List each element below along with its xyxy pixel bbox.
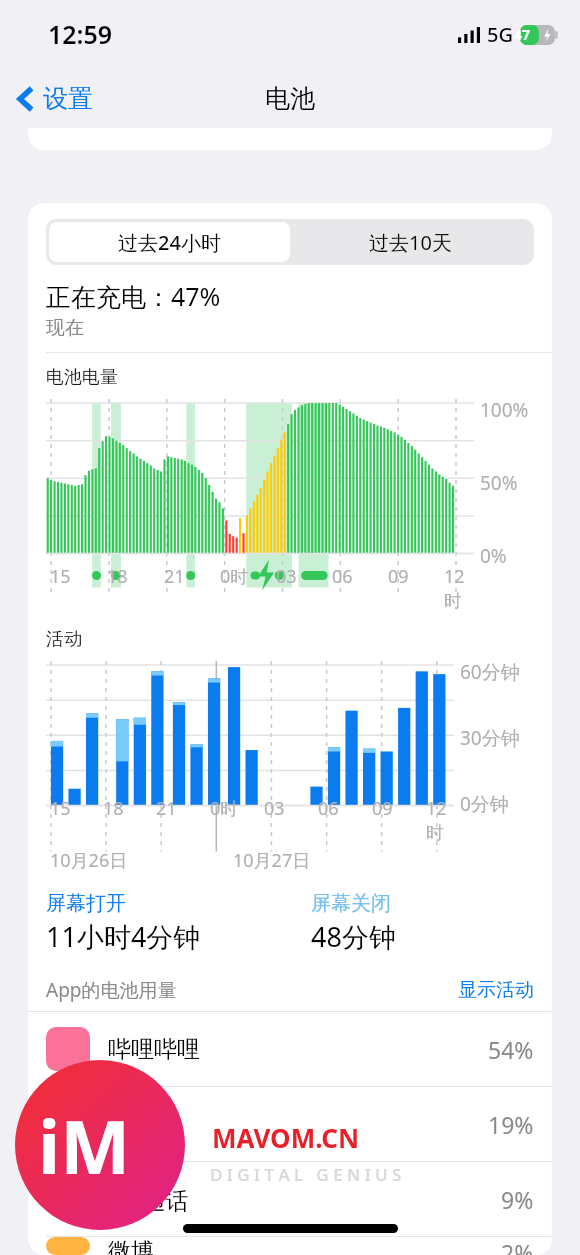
button[interactable]: 哔哩哔哩 bbox=[28, 1012, 552, 1086]
staticText: 60分钟 bbox=[460, 659, 520, 685]
staticText: 过去24小时 bbox=[118, 229, 221, 256]
staticText: 06 bbox=[332, 564, 353, 589]
staticText: 48分钟 bbox=[311, 918, 396, 955]
staticText: 0分钟 bbox=[460, 791, 509, 817]
staticText: 现在 bbox=[46, 316, 84, 340]
staticText: 03 bbox=[276, 564, 297, 589]
staticText: 15 bbox=[50, 564, 71, 589]
button[interactable]: me通话 bbox=[28, 1162, 552, 1236]
staticText: 活动 bbox=[46, 628, 82, 651]
staticText: 03 bbox=[264, 796, 285, 821]
staticText: 100% bbox=[480, 397, 529, 423]
button[interactable]: 过去10天 bbox=[290, 222, 531, 262]
button[interactable]: 设置 bbox=[12, 77, 99, 120]
staticText: 19% bbox=[488, 1109, 534, 1140]
staticText: 21 bbox=[164, 564, 185, 589]
staticText: 12时 bbox=[426, 796, 454, 844]
staticText: 30分钟 bbox=[460, 725, 520, 751]
staticText: me通话 bbox=[108, 1184, 189, 1215]
staticText: 0时 bbox=[220, 564, 249, 589]
staticText: 06 bbox=[318, 796, 339, 821]
staticText: 9% bbox=[501, 1184, 534, 1215]
staticText: 0时 bbox=[210, 796, 239, 821]
staticText: 过去10天 bbox=[369, 229, 452, 256]
staticText: 11小时4分钟 bbox=[46, 918, 201, 955]
button[interactable]: 显示活动 bbox=[458, 978, 534, 1002]
button[interactable]: 屏幕打开 bbox=[46, 891, 311, 955]
staticText: iM bbox=[38, 1095, 130, 1196]
staticText: 正在充电：47% bbox=[46, 279, 221, 313]
staticText: 09 bbox=[372, 796, 393, 821]
staticText: App的电池用量 bbox=[46, 977, 177, 1003]
staticText: 12时 bbox=[444, 564, 474, 612]
staticText: 18 bbox=[103, 796, 124, 821]
staticText: 屏幕关闭 bbox=[311, 891, 391, 916]
staticText: 50% bbox=[480, 470, 518, 496]
staticText: 47 bbox=[514, 25, 531, 44]
staticText: 54% bbox=[488, 1034, 534, 1065]
staticText: 哔哩哔哩 bbox=[108, 1035, 200, 1064]
staticText: 5G bbox=[487, 21, 513, 48]
button[interactable]: 过去24小时 bbox=[49, 222, 290, 262]
staticText: 09 bbox=[388, 564, 409, 589]
staticText: MAVOM.CN bbox=[212, 1120, 360, 1155]
staticText: 设置 bbox=[43, 83, 93, 114]
staticText: 电池 bbox=[265, 83, 315, 114]
staticText: 显示活动 bbox=[458, 978, 534, 1002]
staticText: 15 bbox=[50, 796, 71, 821]
staticText: 微博 bbox=[108, 1237, 154, 1255]
staticText: 10月26日 bbox=[50, 848, 128, 873]
staticText: 电池电量 bbox=[46, 366, 118, 389]
staticText: 21 bbox=[156, 796, 177, 821]
button[interactable]: 屏幕关闭 bbox=[311, 891, 552, 955]
staticText: 12:59 bbox=[48, 17, 113, 51]
staticText: 10月27日 bbox=[233, 848, 311, 873]
button[interactable]: 微博 bbox=[28, 1237, 552, 1255]
staticText: 屏幕打开 bbox=[46, 891, 126, 916]
staticText: 18 bbox=[107, 564, 128, 589]
button[interactable]: 19% bbox=[28, 1087, 552, 1161]
staticText: 0% bbox=[480, 543, 507, 569]
staticText: 2% bbox=[501, 1237, 534, 1255]
staticText: D I G I T A L G E N I U S bbox=[210, 1163, 402, 1186]
